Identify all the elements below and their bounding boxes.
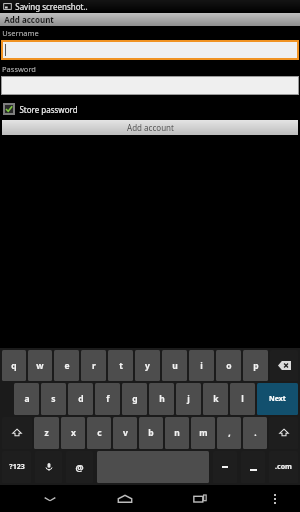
button[interactable]: Voice input (35, 451, 62, 483)
button[interactable]: h (149, 383, 174, 415)
button[interactable]: Hide keyboard (25, 485, 75, 512)
button[interactable]: a (14, 383, 39, 415)
staticText: b (148, 427, 154, 439)
staticText: . (254, 427, 257, 439)
button[interactable]: dot com (269, 451, 298, 483)
staticText: @ (75, 461, 84, 473)
button[interactable]: z (34, 417, 59, 449)
staticText: d (78, 393, 84, 405)
button[interactable]: i (189, 350, 214, 381)
staticText: h (159, 393, 165, 405)
button[interactable]: , (217, 417, 241, 449)
staticText: j (187, 393, 190, 405)
button[interactable]: w (28, 350, 52, 381)
staticText: y (145, 360, 150, 372)
staticText: p (253, 360, 259, 372)
button[interactable]: y (135, 350, 160, 381)
staticText: l (241, 393, 244, 405)
staticText: x (71, 427, 76, 439)
button[interactable]: More options (260, 485, 290, 512)
button[interactable]: p (243, 350, 268, 381)
button[interactable]: k (203, 383, 228, 415)
button[interactable]: r (81, 350, 106, 381)
button[interactable]: At sign (66, 451, 93, 483)
staticText: q (11, 360, 17, 372)
staticText: r (92, 360, 96, 372)
staticText: Username (2, 28, 39, 38)
staticText: Password (2, 64, 36, 74)
button[interactable]: q (2, 350, 26, 381)
button[interactable]: Underscore (241, 451, 265, 483)
button[interactable]: t (108, 350, 133, 381)
staticText: Add account (127, 122, 174, 133)
staticText: k (213, 393, 219, 405)
staticText: g (132, 393, 138, 405)
button[interactable]: m (191, 417, 215, 449)
button[interactable]: f (95, 383, 120, 415)
button[interactable]: b (139, 417, 163, 449)
staticText: Store password (19, 104, 78, 115)
staticText: e (64, 360, 70, 372)
staticText: Next (269, 394, 286, 404)
staticText: c (97, 427, 102, 439)
button[interactable]: u (162, 350, 187, 381)
button[interactable]: g (122, 383, 147, 415)
staticText: , (228, 427, 231, 439)
staticText: i (200, 360, 203, 372)
button[interactable]: x (61, 417, 85, 449)
button[interactable]: e (54, 350, 79, 381)
staticText: o (226, 360, 232, 372)
button[interactable]: o (216, 350, 241, 381)
staticText: a (24, 393, 30, 405)
button[interactable]: l (230, 383, 255, 415)
button[interactable]: j (176, 383, 201, 415)
button[interactable]: s (41, 383, 66, 415)
button[interactable]: n (165, 417, 189, 449)
button[interactable]: Delete (270, 350, 298, 381)
button[interactable]: d (68, 383, 93, 415)
staticText: n (174, 427, 180, 439)
button[interactable]: Home (100, 485, 150, 512)
button[interactable]: Shift (2, 417, 32, 449)
button[interactable]: c (87, 417, 111, 449)
button[interactable] (1, 76, 299, 95)
button[interactable]: . (243, 417, 267, 449)
staticText: Add account (4, 14, 54, 25)
staticText: ?123 (9, 462, 25, 472)
button[interactable]: Symbols (2, 451, 31, 483)
staticText: v (123, 427, 128, 439)
staticText: s (51, 393, 56, 405)
staticText: t (119, 360, 123, 372)
staticText: Saving screenshot.. (15, 1, 88, 12)
button[interactable] (1, 40, 299, 60)
button[interactable]: Hyphen (213, 451, 237, 483)
staticText: f (106, 393, 110, 405)
button[interactable]: Add account (2, 120, 298, 135)
button[interactable]: v (113, 417, 137, 449)
button[interactable]: Store password (3, 103, 300, 115)
button[interactable]: Next (257, 383, 298, 415)
staticText: w (36, 360, 44, 372)
button[interactable]: Recent apps (175, 485, 225, 512)
staticText: z (44, 427, 49, 439)
staticText: m (199, 427, 208, 439)
staticText: .com (275, 462, 292, 472)
button[interactable]: Shift (269, 417, 298, 449)
staticText: u (172, 360, 178, 372)
